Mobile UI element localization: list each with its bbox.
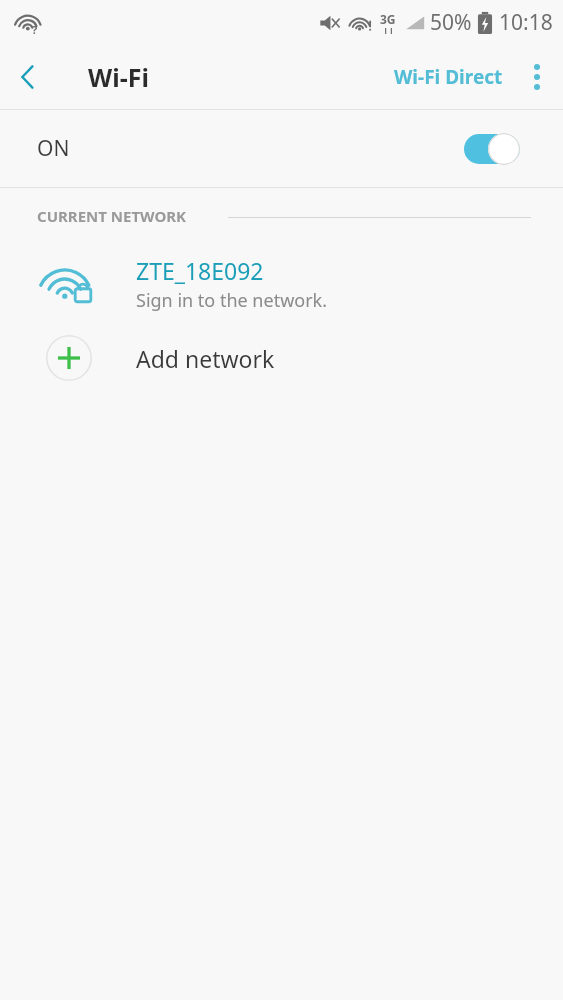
staticText: 10:18 [499, 8, 553, 37]
staticText: ZTE_18E092 [136, 255, 264, 286]
staticText: ? [32, 22, 38, 37]
button[interactable]: ON [0, 110, 563, 187]
button[interactable]: Add network [0, 324, 563, 392]
button[interactable]: More options [511, 51, 563, 103]
button[interactable]: Wi-Fi Direct [386, 54, 511, 100]
button[interactable]: ZTE_18E092 [0, 244, 563, 324]
staticText: CURRENT NETWORK [37, 206, 187, 226]
staticText: Add network [136, 343, 275, 374]
button[interactable]: Back [0, 49, 56, 105]
staticText: ON [37, 134, 70, 163]
staticText: Sign in to the network. [136, 288, 328, 313]
staticText: Wi-Fi Direct [394, 64, 503, 90]
staticText: Wi-Fi [88, 60, 149, 94]
staticText: 3G [380, 11, 396, 27]
staticText: 50% [430, 8, 472, 37]
